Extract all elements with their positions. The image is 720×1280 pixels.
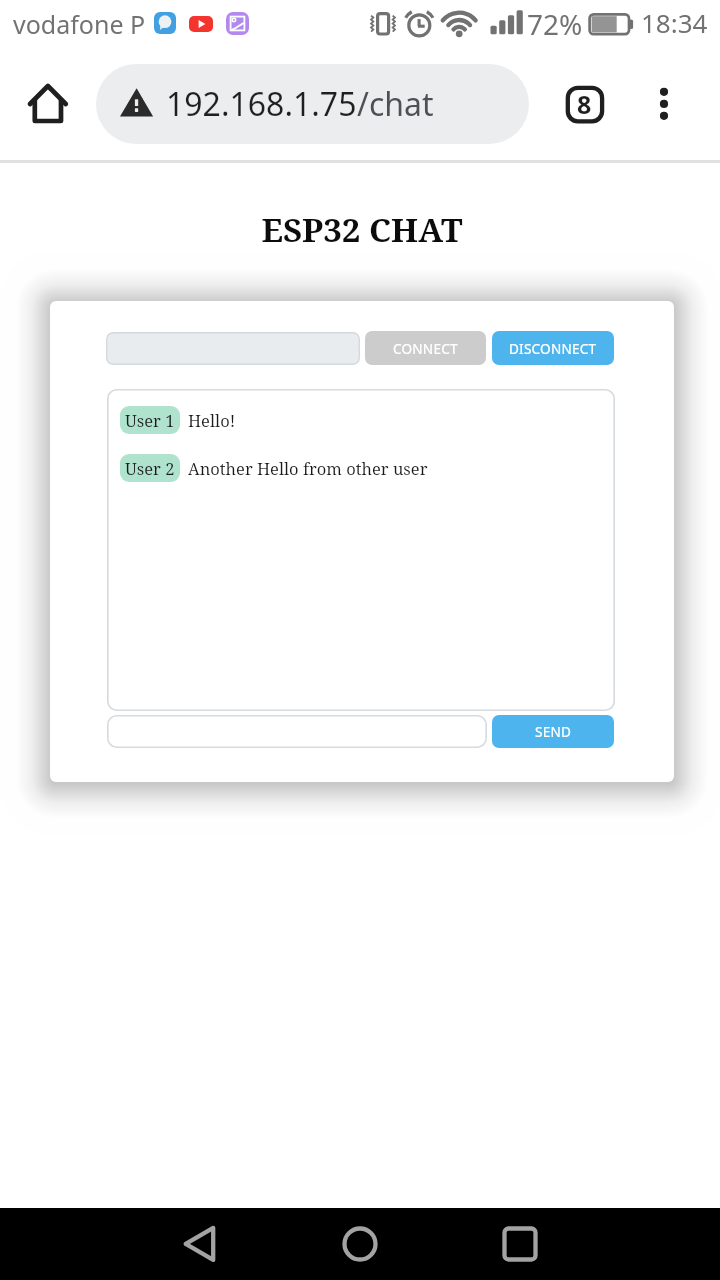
staticText: User 2 bbox=[125, 457, 175, 479]
staticText: Hello! bbox=[188, 409, 236, 431]
staticText: SEND bbox=[535, 722, 572, 741]
button[interactable]: Recent apps bbox=[479, 1208, 561, 1280]
staticText: DISCONNECT bbox=[509, 339, 597, 358]
staticText: User 1 bbox=[125, 409, 175, 431]
staticText: vodafone P bbox=[13, 7, 146, 41]
staticText: 72% bbox=[527, 5, 583, 43]
staticText: 192.168.1.75 bbox=[166, 82, 357, 126]
button[interactable]: Home bbox=[319, 1208, 401, 1280]
staticText: CONNECT bbox=[393, 339, 458, 358]
button[interactable]: More options bbox=[639, 79, 689, 129]
button[interactable] bbox=[107, 715, 487, 748]
button[interactable]: SEND bbox=[492, 715, 614, 748]
button[interactable]: Back bbox=[159, 1208, 241, 1280]
staticText: 18:34 bbox=[641, 5, 708, 40]
button[interactable] bbox=[106, 332, 360, 365]
staticText: Another Hello from other user bbox=[188, 457, 428, 479]
button[interactable]: 192.168.1.75 bbox=[96, 64, 529, 144]
button[interactable]: DISCONNECT bbox=[492, 331, 614, 365]
staticText: /chat bbox=[357, 82, 434, 126]
staticText: ESP32 CHAT bbox=[2, 207, 720, 252]
button[interactable]: CONNECT bbox=[365, 331, 486, 365]
button[interactable]: Home bbox=[22, 78, 74, 130]
button[interactable]: Tabs bbox=[556, 76, 612, 132]
staticText: 8 bbox=[577, 87, 592, 121]
